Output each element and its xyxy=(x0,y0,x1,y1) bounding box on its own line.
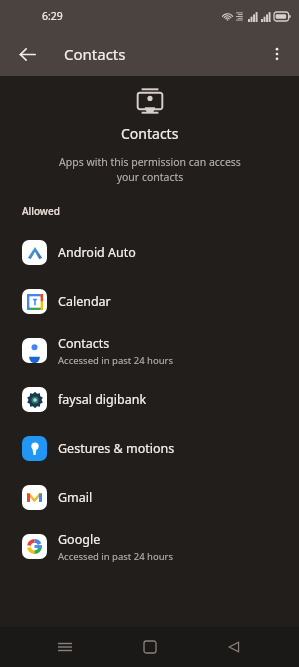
button[interactable]: Google xyxy=(0,522,299,571)
button[interactable]: Back xyxy=(214,627,254,667)
button[interactable]: Calendar xyxy=(0,277,299,326)
button[interactable]: Back xyxy=(12,39,42,69)
button[interactable]: More options xyxy=(261,38,293,70)
staticText: Google xyxy=(58,531,101,548)
button[interactable]: Home xyxy=(130,627,170,667)
staticText: Contacts xyxy=(121,124,179,143)
staticText: Accessed in past 24 hours xyxy=(58,550,174,563)
button[interactable]: Gestures & motions xyxy=(0,424,299,473)
staticText: Accessed in past 24 hours xyxy=(58,354,174,367)
staticText: Gestures & motions xyxy=(58,440,175,457)
staticText: Gmail xyxy=(58,489,93,506)
staticText: Calendar xyxy=(58,293,111,310)
staticText: 6:29 xyxy=(42,9,63,23)
staticText: Allowed xyxy=(22,204,60,218)
button[interactable]: Android Auto xyxy=(0,228,299,277)
button[interactable]: faysal digibank xyxy=(0,375,299,424)
staticText: Apps with this permission can access you… xyxy=(59,155,241,184)
button[interactable]: Gmail xyxy=(0,473,299,522)
staticText: Android Auto xyxy=(58,244,136,261)
staticText: Contacts xyxy=(64,44,126,64)
button[interactable]: Contacts xyxy=(0,326,299,375)
button[interactable]: Recent apps xyxy=(45,627,85,667)
staticText: faysal digibank xyxy=(58,391,147,408)
staticText: Contacts xyxy=(58,335,110,352)
